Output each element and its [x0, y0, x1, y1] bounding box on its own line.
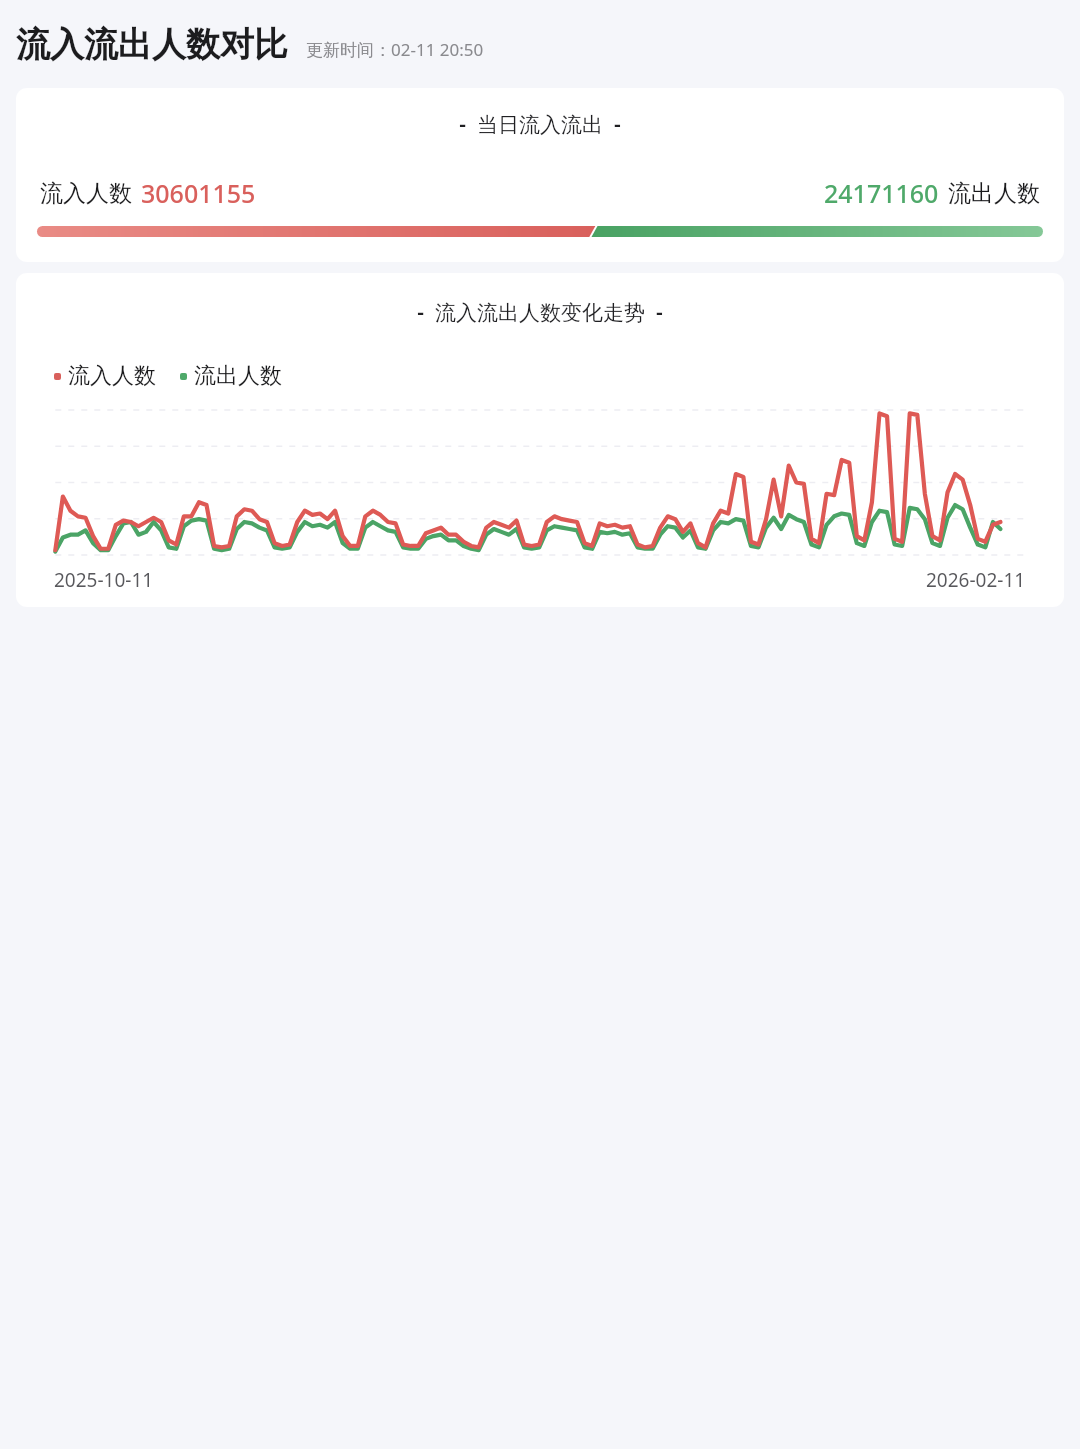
- staticText: 2026-02-11: [926, 567, 1026, 593]
- staticText: 流出人数: [194, 362, 282, 390]
- button[interactable]: 流入人数: [54, 362, 156, 390]
- button[interactable]: - 当日流入流出 -: [16, 88, 1064, 262]
- staticText: 流入人数: [40, 179, 132, 208]
- staticText: 流入人数: [68, 362, 156, 390]
- button[interactable]: 流出人数: [180, 362, 282, 390]
- staticText: 24171160: [824, 176, 939, 210]
- staticText: - 当日流入流出 -: [16, 110, 1064, 139]
- staticText: 流出人数: [948, 179, 1040, 208]
- button[interactable]: - 流入流出人数变化走势 -: [16, 273, 1064, 607]
- staticText: 2025-10-11: [54, 567, 154, 593]
- staticText: 更新时间：02-11 20:50: [306, 38, 484, 61]
- staticText: 流入流出人数对比: [16, 23, 288, 66]
- staticText: 30601155: [141, 176, 256, 210]
- staticText: - 流入流出人数变化走势 -: [16, 298, 1064, 327]
- other: 流入流出人数变化走势折线图: [16, 410, 1064, 555]
